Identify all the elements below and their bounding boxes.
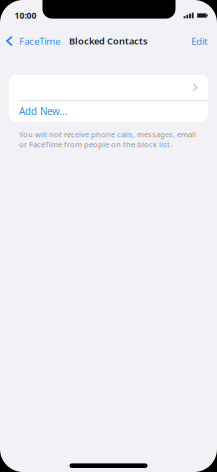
button[interactable]: FaceTime — [0, 32, 60, 50]
button[interactable]: Add New... — [9, 101, 208, 122]
staticText: FaceTime — [19, 35, 60, 47]
staticText: You will not receive phone calls, messag… — [19, 129, 196, 149]
staticText: Blocked Contacts — [69, 35, 148, 47]
staticText: Edit — [191, 35, 207, 47]
staticText: 10:00 — [15, 10, 37, 21]
staticText: Add New... — [19, 105, 68, 118]
button[interactable]: Edit — [191, 32, 217, 50]
